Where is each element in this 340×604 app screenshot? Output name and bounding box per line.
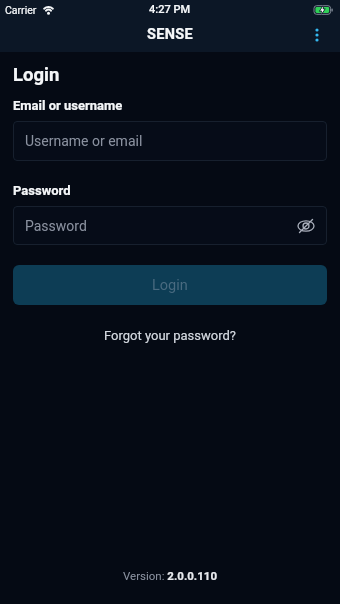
button[interactable]: Username or email <box>13 121 327 161</box>
staticText: 4:27 PM <box>149 3 191 16</box>
staticText: Password <box>25 218 87 234</box>
staticText: Version: 2.0.0.110 <box>123 569 217 582</box>
staticText: Login <box>152 277 188 294</box>
staticText: Carrier <box>5 4 37 16</box>
button[interactable] <box>306 24 328 46</box>
button[interactable]: Password <box>13 206 327 245</box>
staticText: Password <box>13 183 71 198</box>
staticText: Forgot your password? <box>104 328 236 343</box>
staticText: Username or email <box>25 133 143 149</box>
button[interactable]: Login <box>13 265 327 305</box>
staticText: Login <box>13 64 60 86</box>
button[interactable]: Forgot your password? <box>104 328 236 343</box>
staticText: Email or username <box>13 98 123 112</box>
staticText: SENSE <box>147 26 193 43</box>
